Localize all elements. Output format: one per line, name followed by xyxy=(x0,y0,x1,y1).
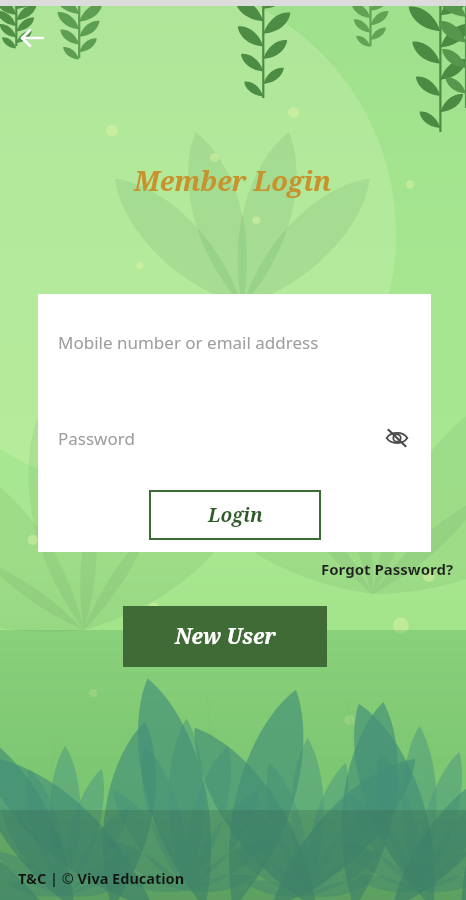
button[interactable]: Back xyxy=(8,14,56,62)
button[interactable]: Show password xyxy=(379,420,415,456)
staticText: Login xyxy=(208,502,263,528)
button[interactable]: Mobile number or email address xyxy=(38,327,431,358)
button[interactable]: Password xyxy=(58,423,379,454)
staticText: New User xyxy=(175,622,276,651)
button[interactable]: New User xyxy=(123,606,327,667)
button[interactable]: Forgot Password? xyxy=(309,554,466,584)
staticText: T&C | © Viva Education xyxy=(18,868,185,888)
button[interactable]: T&C | © Viva Education xyxy=(14,864,189,892)
staticText: Member Login xyxy=(134,162,332,199)
button[interactable]: Login xyxy=(149,490,321,540)
staticText: Forgot Password? xyxy=(321,559,454,579)
